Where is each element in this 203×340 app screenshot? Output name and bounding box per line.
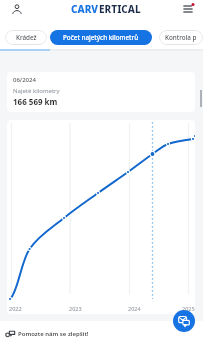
button[interactable]: Account	[11, 3, 23, 15]
button[interactable]: Messages	[173, 310, 195, 332]
staticText: Počet najetých kilometrů	[63, 33, 139, 42]
staticText: 06/2024	[13, 76, 36, 84]
button[interactable]: Krádež	[5, 30, 47, 45]
staticText: 166 569 km	[13, 96, 58, 107]
staticText: Krádež	[16, 33, 37, 42]
button[interactable]: Počet najetých kilometrů	[50, 30, 152, 45]
staticText: 2022	[9, 305, 22, 312]
button[interactable]: 06/2024	[7, 72, 195, 112]
staticText: Pomozte nám se zlepšit!	[18, 330, 89, 338]
staticText: 2023	[69, 305, 82, 312]
staticText: 2025	[182, 305, 195, 312]
staticText: ERTICAL	[99, 2, 141, 16]
staticText: CARV	[71, 2, 99, 16]
button[interactable]: Menu	[182, 3, 194, 15]
staticText: Najeté kilometry	[13, 87, 60, 95]
button[interactable]: Pomozte nám se zlepšit!	[5, 328, 89, 339]
staticText: 2024	[128, 305, 141, 312]
button[interactable]: Kontrola p	[159, 30, 203, 45]
staticText: Kontrola p	[165, 33, 197, 42]
